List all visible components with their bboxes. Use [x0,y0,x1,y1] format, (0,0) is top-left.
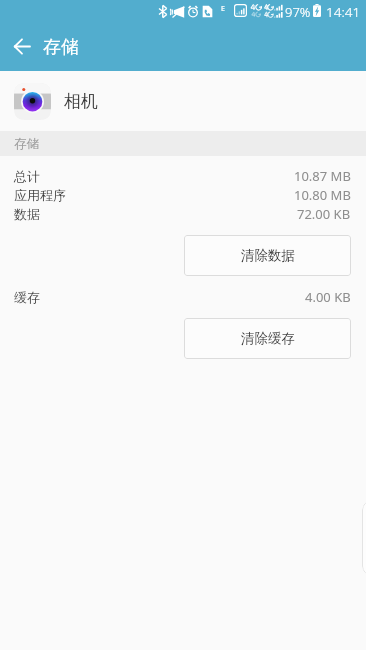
button[interactable]: 相机 [0,71,366,131]
staticText: E [221,4,225,14]
staticText: 14:41 [326,3,361,21]
staticText: 存储 [43,36,79,59]
staticText: 10.87 MB [294,167,351,185]
staticText: 缓存 [14,289,40,305]
staticText: 存储 [14,136,39,152]
staticText: 97% [285,3,311,21]
button[interactable]: 清除数据 [184,235,351,276]
staticText: 清除数据 [241,247,295,264]
staticText: 清除缓存 [241,330,295,347]
staticText: 总计 [14,168,40,184]
staticText: 72.00 KB [297,205,351,223]
button[interactable]: 清除缓存 [184,318,351,359]
staticText: 10.80 MB [294,186,351,204]
staticText: 应用程序 [14,187,66,203]
button[interactable]: Back [4,28,40,64]
staticText: 相机 [64,91,98,112]
staticText: 4.00 KB [305,288,351,306]
staticText: 数据 [14,206,40,222]
